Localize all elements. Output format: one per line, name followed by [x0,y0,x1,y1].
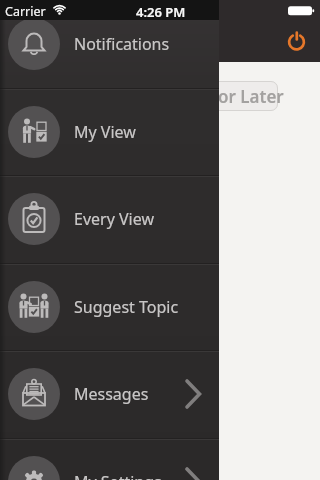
button[interactable]: Suggest Topic [0,263,219,351]
button[interactable]: Messages [0,350,219,438]
button[interactable] [281,27,311,57]
staticText: Suggest Topic [74,296,179,318]
staticText: My View [74,121,136,143]
staticText: Messages [74,383,149,405]
button[interactable]: My View [0,88,219,176]
staticText: Notifications [74,33,170,55]
staticText: or Later [218,85,284,108]
staticText: Every View [74,208,154,230]
button[interactable]: My Settings [0,438,219,480]
staticText: Carrier [5,3,46,20]
button[interactable]: Every View [0,175,219,263]
button[interactable] [150,81,278,111]
staticText: 4:26 PM [136,3,186,21]
staticText: My Settings [74,471,162,480]
button[interactable]: Notifications [0,0,219,88]
